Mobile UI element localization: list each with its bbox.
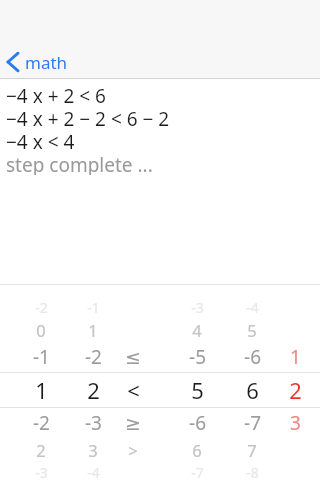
button[interactable]: 7: [229, 433, 275, 466]
staticText: -2: [35, 298, 48, 317]
staticText: -6: [244, 344, 261, 370]
staticText: -4: [87, 463, 100, 480]
button[interactable]: 3: [70, 433, 116, 466]
button[interactable]: -2: [18, 406, 64, 439]
staticText: <: [127, 375, 140, 405]
staticText: 4: [192, 319, 202, 341]
button[interactable]: -2: [18, 291, 64, 324]
button[interactable]: Back: [6, 45, 68, 79]
button[interactable]: <: [113, 373, 153, 406]
staticText: -2: [85, 344, 102, 370]
button[interactable]: -7: [229, 406, 275, 439]
staticText: -1: [33, 344, 50, 370]
button[interactable]: -4: [70, 456, 116, 480]
staticText: -6: [189, 410, 206, 436]
button[interactable]: -7: [174, 456, 220, 480]
staticText: math: [25, 51, 68, 74]
button[interactable]: -6: [229, 340, 275, 373]
button[interactable]: 1: [18, 373, 64, 406]
button[interactable]: -1: [18, 340, 64, 373]
staticText: ≤: [125, 346, 141, 368]
button[interactable]: -3: [174, 291, 220, 324]
staticText: -3: [85, 410, 102, 436]
button[interactable]: -5: [174, 340, 220, 373]
button[interactable]: -2: [70, 340, 116, 373]
staticText: -3: [35, 463, 48, 480]
staticText: -5: [189, 344, 206, 370]
staticText: −4 x + 2 − 2 < 6 − 2: [6, 106, 170, 129]
staticText: ≥: [125, 412, 141, 434]
staticText: 0: [36, 319, 46, 341]
button[interactable]: 1: [70, 313, 116, 346]
staticText: 2: [289, 375, 302, 405]
staticText: step complete ...: [6, 152, 153, 175]
button[interactable]: 3: [278, 406, 312, 439]
button[interactable]: -4: [229, 291, 275, 324]
staticText: 6: [192, 439, 202, 461]
staticText: −4 x < 4: [6, 129, 75, 152]
staticText: 3: [88, 439, 98, 461]
button[interactable]: 6: [229, 373, 275, 406]
staticText: 1: [290, 344, 301, 370]
staticText: 7: [247, 439, 257, 461]
button[interactable]: ≥: [113, 406, 153, 439]
button[interactable]: 2: [18, 433, 64, 466]
staticText: 6: [246, 375, 259, 405]
button[interactable]: -3: [70, 406, 116, 439]
staticText: -1: [87, 298, 100, 317]
button[interactable]: 4: [174, 313, 220, 346]
button[interactable]: -8: [229, 456, 275, 480]
staticText: -8: [246, 463, 259, 480]
button[interactable]: ≤: [113, 340, 153, 373]
staticText: -7: [191, 463, 204, 480]
button[interactable]: 1: [278, 340, 312, 373]
staticText: 5: [191, 375, 204, 405]
button[interactable]: -6: [174, 406, 220, 439]
button[interactable]: 0: [18, 313, 64, 346]
staticText: -3: [191, 298, 204, 317]
other: Back: [6, 52, 20, 72]
button[interactable]: 5: [174, 373, 220, 406]
staticText: -2: [33, 410, 50, 436]
staticText: 3: [290, 410, 301, 436]
staticText: 1: [35, 375, 48, 405]
staticText: 2: [87, 375, 100, 405]
button[interactable]: >: [113, 433, 153, 466]
staticText: 5: [247, 319, 257, 341]
staticText: −4 x + 2 < 6: [6, 83, 106, 106]
staticText: -7: [244, 410, 261, 436]
staticText: >: [128, 439, 138, 461]
staticText: 2: [36, 439, 46, 461]
button[interactable]: 5: [229, 313, 275, 346]
staticText: -4: [246, 298, 259, 317]
button[interactable]: 2: [278, 373, 312, 406]
button[interactable]: -3: [18, 456, 64, 480]
button[interactable]: 2: [70, 373, 116, 406]
staticText: 1: [88, 319, 98, 341]
button[interactable]: 6: [174, 433, 220, 466]
